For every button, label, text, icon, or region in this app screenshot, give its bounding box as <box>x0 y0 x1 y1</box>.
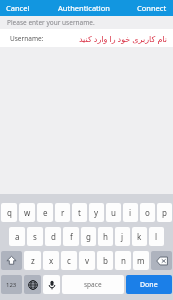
button[interactable]: z <box>24 251 41 270</box>
button[interactable]: Done <box>126 275 172 294</box>
button[interactable]: t <box>72 203 87 222</box>
button[interactable]: p <box>157 203 172 222</box>
staticText: w <box>24 207 31 218</box>
button[interactable]: h <box>98 227 113 246</box>
staticText: b <box>103 255 108 266</box>
staticText: i <box>129 207 132 218</box>
button[interactable]: e <box>37 203 53 222</box>
staticText: s <box>33 231 37 242</box>
button[interactable]: q <box>1 203 17 222</box>
staticText: u <box>111 207 116 218</box>
button[interactable]: k <box>132 227 147 246</box>
staticText: z <box>31 255 35 266</box>
button[interactable]: n <box>115 251 131 270</box>
button[interactable]: y <box>89 203 104 222</box>
button[interactable]: Cancel <box>0 0 36 16</box>
button[interactable]: Voice input <box>43 275 60 294</box>
staticText: a <box>15 231 20 242</box>
staticText: p <box>162 207 167 218</box>
staticText: v <box>85 255 90 266</box>
button[interactable]: v <box>79 251 95 270</box>
button[interactable]: Change keyboard language <box>24 275 41 294</box>
button[interactable]: x <box>43 251 59 270</box>
button[interactable]: s <box>27 227 43 246</box>
button[interactable]: Username: <box>0 29 173 47</box>
button[interactable]: b <box>97 251 113 270</box>
staticText: l <box>155 231 158 242</box>
staticText: n <box>121 255 126 266</box>
staticText: t <box>78 207 81 218</box>
button[interactable]: Shift <box>1 251 22 270</box>
button[interactable]: g <box>81 227 96 246</box>
staticText: Username: <box>10 34 44 43</box>
button[interactable]: i <box>123 203 138 222</box>
staticText: x <box>49 255 54 266</box>
button[interactable]: m <box>133 251 149 270</box>
staticText: Authentication <box>58 3 110 13</box>
staticText: f <box>70 231 73 242</box>
button[interactable]: c <box>61 251 77 270</box>
button[interactable]: j <box>115 227 130 246</box>
staticText: q <box>7 207 12 218</box>
button[interactable]: r <box>55 203 70 222</box>
staticText: r <box>61 207 65 218</box>
button[interactable]: Backspace <box>151 251 172 270</box>
staticText: Cancel <box>6 3 30 13</box>
button[interactable]: 123 <box>1 275 22 294</box>
staticText: Please enter your username. <box>7 18 95 27</box>
button[interactable]: u <box>106 203 121 222</box>
staticText: Connect <box>137 3 167 13</box>
staticText: j <box>121 231 124 242</box>
button[interactable]: w <box>19 203 35 222</box>
button[interactable]: f <box>63 227 79 246</box>
staticText: d <box>51 231 56 242</box>
staticText: space <box>84 280 102 289</box>
button[interactable]: o <box>140 203 155 222</box>
button[interactable]: Connect <box>131 0 173 16</box>
staticText: e <box>43 207 48 218</box>
staticText: c <box>67 255 71 266</box>
staticText: 123 <box>6 281 17 289</box>
staticText: o <box>145 207 150 218</box>
staticText: g <box>86 231 91 242</box>
staticText: Done <box>140 280 158 290</box>
button[interactable]: d <box>45 227 61 246</box>
button[interactable]: space <box>62 275 124 294</box>
staticText: m <box>137 255 145 266</box>
staticText: y <box>94 207 99 218</box>
staticText: h <box>103 231 108 242</box>
staticText: k <box>137 231 142 242</box>
button[interactable]: a <box>9 227 25 246</box>
button[interactable]: l <box>149 227 164 246</box>
staticText: نام کاربری خود را وارد کنید <box>48 33 167 44</box>
